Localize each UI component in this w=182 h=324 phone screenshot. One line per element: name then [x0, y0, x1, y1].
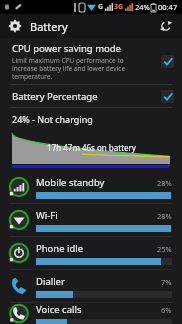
button[interactable]: 17h 47m 46s on battery	[12, 131, 170, 169]
staticText: 00:47	[158, 2, 178, 12]
button[interactable]: Mobile standby	[0, 171, 182, 204]
staticText: Battery Percentage	[12, 90, 98, 103]
button[interactable]: Refresh	[156, 16, 176, 36]
button[interactable]: Battery Percentage	[161, 90, 174, 103]
staticText: 7%	[161, 277, 172, 287]
button[interactable]: Settings	[6, 17, 24, 35]
button[interactable]: Dialler	[0, 270, 182, 303]
staticText: 17h 47m 46s on battery	[47, 142, 136, 153]
button[interactable]: CPU power saving mode	[161, 55, 174, 68]
button[interactable]: Voice calls	[0, 303, 182, 324]
staticText: Battery	[30, 19, 68, 34]
staticText: Voice calls	[36, 303, 161, 316]
staticText: Dialler	[36, 275, 161, 288]
staticText: Mobile standby	[36, 176, 157, 189]
staticText: 3G	[114, 2, 124, 12]
staticText: G	[98, 2, 104, 12]
staticText: 6%	[161, 305, 172, 315]
button[interactable]: CPU power saving mode	[0, 38, 182, 84]
staticText: 28%	[157, 178, 172, 188]
button[interactable]: Battery Percentage	[0, 85, 182, 107]
staticText: 25%	[157, 244, 172, 254]
button[interactable]: Phone idle	[0, 237, 182, 270]
staticText: Wi-Fi	[36, 209, 157, 222]
staticText: Phone idle	[36, 242, 157, 255]
button[interactable]: Wi-Fi	[0, 204, 182, 237]
staticText: CPU power saving mode	[12, 42, 121, 55]
staticText: 28%	[157, 211, 172, 221]
staticText: Limit maximum CPU performance to increas…	[12, 56, 126, 81]
staticText: 24%	[135, 2, 150, 12]
staticText: 24% - Not charging	[12, 113, 93, 125]
